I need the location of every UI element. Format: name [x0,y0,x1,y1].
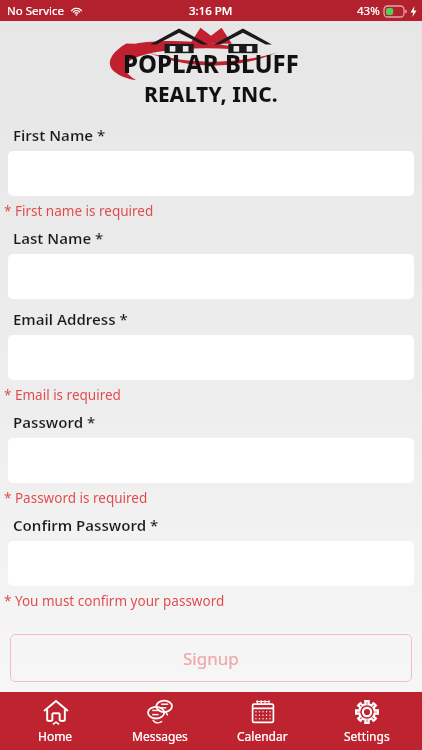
staticText: * You must confirm your password [4,592,225,610]
staticText: 43% [357,3,380,19]
button[interactable]: Calendar [215,692,310,750]
staticText: * First name is required [4,202,154,220]
staticText: Last Name * [13,228,104,248]
staticText: Calendar [237,728,288,744]
button[interactable]: Messages [112,692,207,750]
button[interactable]: Home [8,692,103,750]
staticText: Confirm Password * [13,515,159,535]
staticText: First Name * [13,125,106,145]
staticText: No Service [7,3,65,19]
staticText: POPLAR BLUFF [123,47,299,80]
staticText: Password * [13,412,96,432]
staticText: REALTY, INC. [144,80,278,105]
staticText: Settings [344,728,390,744]
staticText: * Password is required [4,489,148,507]
button[interactable]: Signup [10,634,412,682]
staticText: Home [38,728,73,744]
staticText: Messages [132,728,188,744]
staticText: 3:16 PM [189,3,233,19]
staticText: Signup [183,647,239,670]
staticText: * Email is required [4,386,121,404]
button[interactable]: Settings [319,692,414,750]
staticText: Email Address * [13,309,128,329]
